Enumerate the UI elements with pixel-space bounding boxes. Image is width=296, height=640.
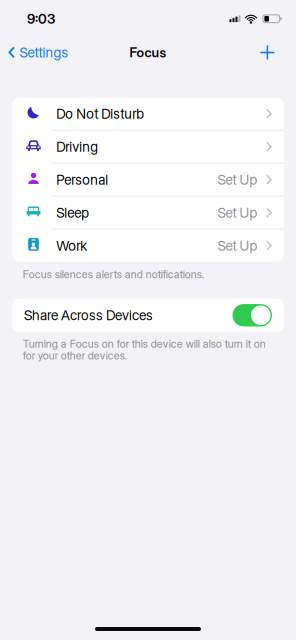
staticText: Set Up (217, 237, 257, 254)
staticText: Set Up (217, 171, 257, 188)
button[interactable]: Sleep (12, 196, 284, 229)
staticText: Do Not Disturb (56, 105, 144, 122)
staticText: Share Across Devices (24, 307, 153, 324)
button[interactable]: Add Focus (250, 37, 296, 67)
staticText: Focus silences alerts and notifications. (23, 268, 204, 281)
staticText: 9:03 (27, 10, 55, 27)
staticText: Focus (129, 44, 166, 60)
staticText: Set Up (217, 204, 257, 221)
button[interactable]: Personal (12, 163, 284, 196)
button[interactable]: Work (12, 229, 284, 262)
staticText: Personal (56, 171, 108, 188)
button[interactable]: Do Not Disturb (12, 97, 284, 130)
button[interactable]: Share Across Devices (232, 304, 272, 326)
button[interactable]: Settings (0, 37, 76, 67)
button[interactable]: Driving (12, 130, 284, 163)
staticText: Sleep (56, 204, 89, 221)
staticText: for your other devices. (23, 349, 127, 362)
staticText: Turning a Focus on for this device will … (23, 337, 266, 350)
staticText: Work (56, 237, 87, 254)
staticText: Settings (19, 44, 68, 61)
staticText: Driving (56, 138, 98, 155)
